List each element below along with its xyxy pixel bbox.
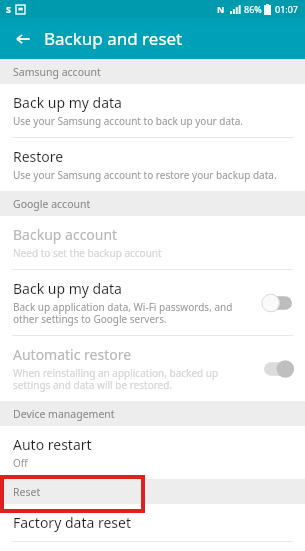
staticText: Factory data reset: [13, 513, 131, 532]
staticText: Backup and reset: [44, 27, 183, 50]
button[interactable]: Auto restart: [0, 426, 305, 479]
staticText: Samsung account: [13, 65, 101, 79]
staticText: N: [217, 3, 225, 15]
staticText: Back up application data, Wi-Fi password…: [13, 300, 253, 326]
button[interactable]: Back up my data: [0, 84, 305, 137]
staticText: S: [6, 3, 11, 15]
staticText: Restore: [13, 147, 64, 166]
staticText: Back up my data: [13, 93, 122, 112]
staticText: Use your Samsung account to back up your…: [13, 114, 243, 128]
button[interactable]: Factory data reset: [0, 504, 305, 541]
staticText: Use your Samsung account to restore your…: [13, 168, 277, 182]
button[interactable]: Automatic restore: [0, 336, 305, 401]
staticText: Need to set the backup account: [13, 246, 162, 260]
staticText: Automatic restore: [13, 345, 132, 364]
staticText: Backup account: [13, 225, 118, 244]
staticText: Off: [13, 456, 28, 470]
button[interactable]: Back: [8, 24, 38, 54]
button[interactable]: On: [261, 358, 295, 380]
staticText: Device management: [13, 407, 115, 421]
button[interactable]: Restore: [0, 138, 305, 191]
staticText: 86%: [244, 3, 262, 15]
staticText: 01:07: [275, 3, 299, 15]
staticText: Back up my data: [13, 279, 122, 298]
button[interactable]: Backup account: [0, 216, 305, 269]
staticText: Google account: [13, 197, 91, 211]
staticText: Auto restart: [13, 435, 92, 454]
button[interactable]: Back up my data: [0, 270, 305, 335]
staticText: When reinstalling an application, backed…: [13, 366, 253, 392]
button[interactable]: Off: [261, 292, 295, 314]
staticText: Reset: [13, 485, 41, 499]
